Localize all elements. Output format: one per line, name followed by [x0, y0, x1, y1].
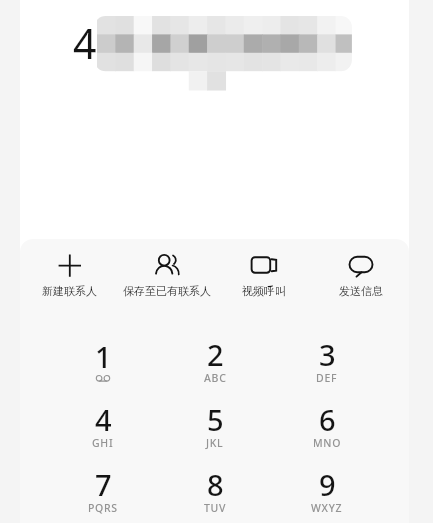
staticText: 8 [207, 465, 224, 504]
button[interactable]: 3 [271, 329, 383, 394]
button[interactable]: 6 [271, 394, 383, 459]
staticText: 保存至已有联系人 [123, 284, 211, 298]
other: New contact [56, 252, 82, 278]
staticText: GHI [92, 436, 114, 450]
staticText: MNO [313, 436, 342, 450]
staticText: 1 [95, 337, 112, 376]
staticText: 6 [319, 400, 336, 439]
button[interactable]: 8 [159, 459, 271, 523]
staticText: 4 [95, 400, 112, 439]
staticText: 5 [207, 400, 224, 439]
other: Video call [251, 252, 277, 278]
button[interactable]: Video call [215, 239, 312, 311]
staticText: DEF [316, 371, 338, 385]
staticText: PQRS [88, 501, 118, 515]
staticText: 9 [319, 465, 336, 504]
staticText: 新建联系人 [42, 284, 97, 298]
staticText: WXYZ [311, 501, 343, 515]
button[interactable]: Send message [312, 239, 409, 311]
staticText: 4 [73, 15, 97, 71]
button[interactable]: 1 [46, 329, 159, 394]
staticText: ABC [204, 371, 227, 385]
button[interactable]: 5 [159, 394, 271, 459]
staticText: 7 [95, 465, 112, 504]
button[interactable]: 4 [46, 394, 159, 459]
button[interactable]: 7 [46, 459, 159, 523]
button[interactable]: 2 [159, 329, 271, 394]
button[interactable]: 9 [271, 459, 383, 523]
other: Save to existing contact [154, 252, 180, 278]
staticText: 发送信息 [339, 284, 383, 298]
other: Send message [348, 252, 374, 278]
staticText: TUV [204, 501, 227, 515]
button[interactable]: New contact [20, 239, 118, 311]
button[interactable]: Save to existing contact [118, 239, 215, 311]
staticText: 3 [319, 335, 336, 374]
staticText: 2 [207, 335, 224, 374]
staticText: 视频呼叫 [242, 284, 286, 298]
staticText: JKL [206, 436, 224, 450]
